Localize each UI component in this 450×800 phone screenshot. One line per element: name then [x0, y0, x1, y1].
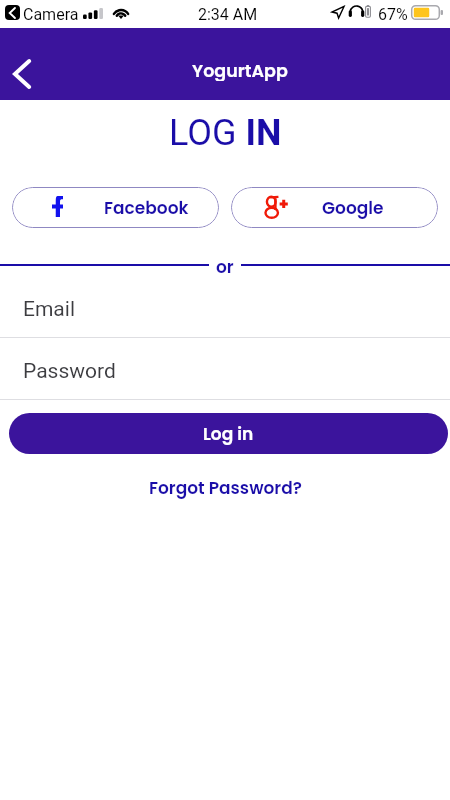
- button[interactable]: Google: [231, 187, 438, 228]
- staticText: 67%: [378, 5, 408, 24]
- staticText: Log in: [203, 422, 254, 446]
- button[interactable]: Log in: [9, 413, 448, 454]
- button[interactable]: Back: [0, 52, 44, 96]
- staticText: or: [216, 255, 234, 277]
- staticText: LOG IN: [169, 112, 282, 154]
- staticText: Google: [322, 196, 384, 220]
- staticText: YogurtApp: [192, 59, 288, 81]
- button[interactable]: Forgot Password?: [149, 476, 302, 500]
- button[interactable]: Email: [0, 295, 450, 338]
- button[interactable]: Password: [0, 357, 450, 400]
- staticText: 2:34 AM: [198, 5, 258, 24]
- button[interactable]: Facebook: [12, 187, 219, 228]
- staticText: Password: [23, 359, 116, 384]
- staticText: Email: [23, 297, 75, 322]
- staticText: Facebook: [104, 196, 189, 220]
- staticText: Camera: [23, 5, 79, 24]
